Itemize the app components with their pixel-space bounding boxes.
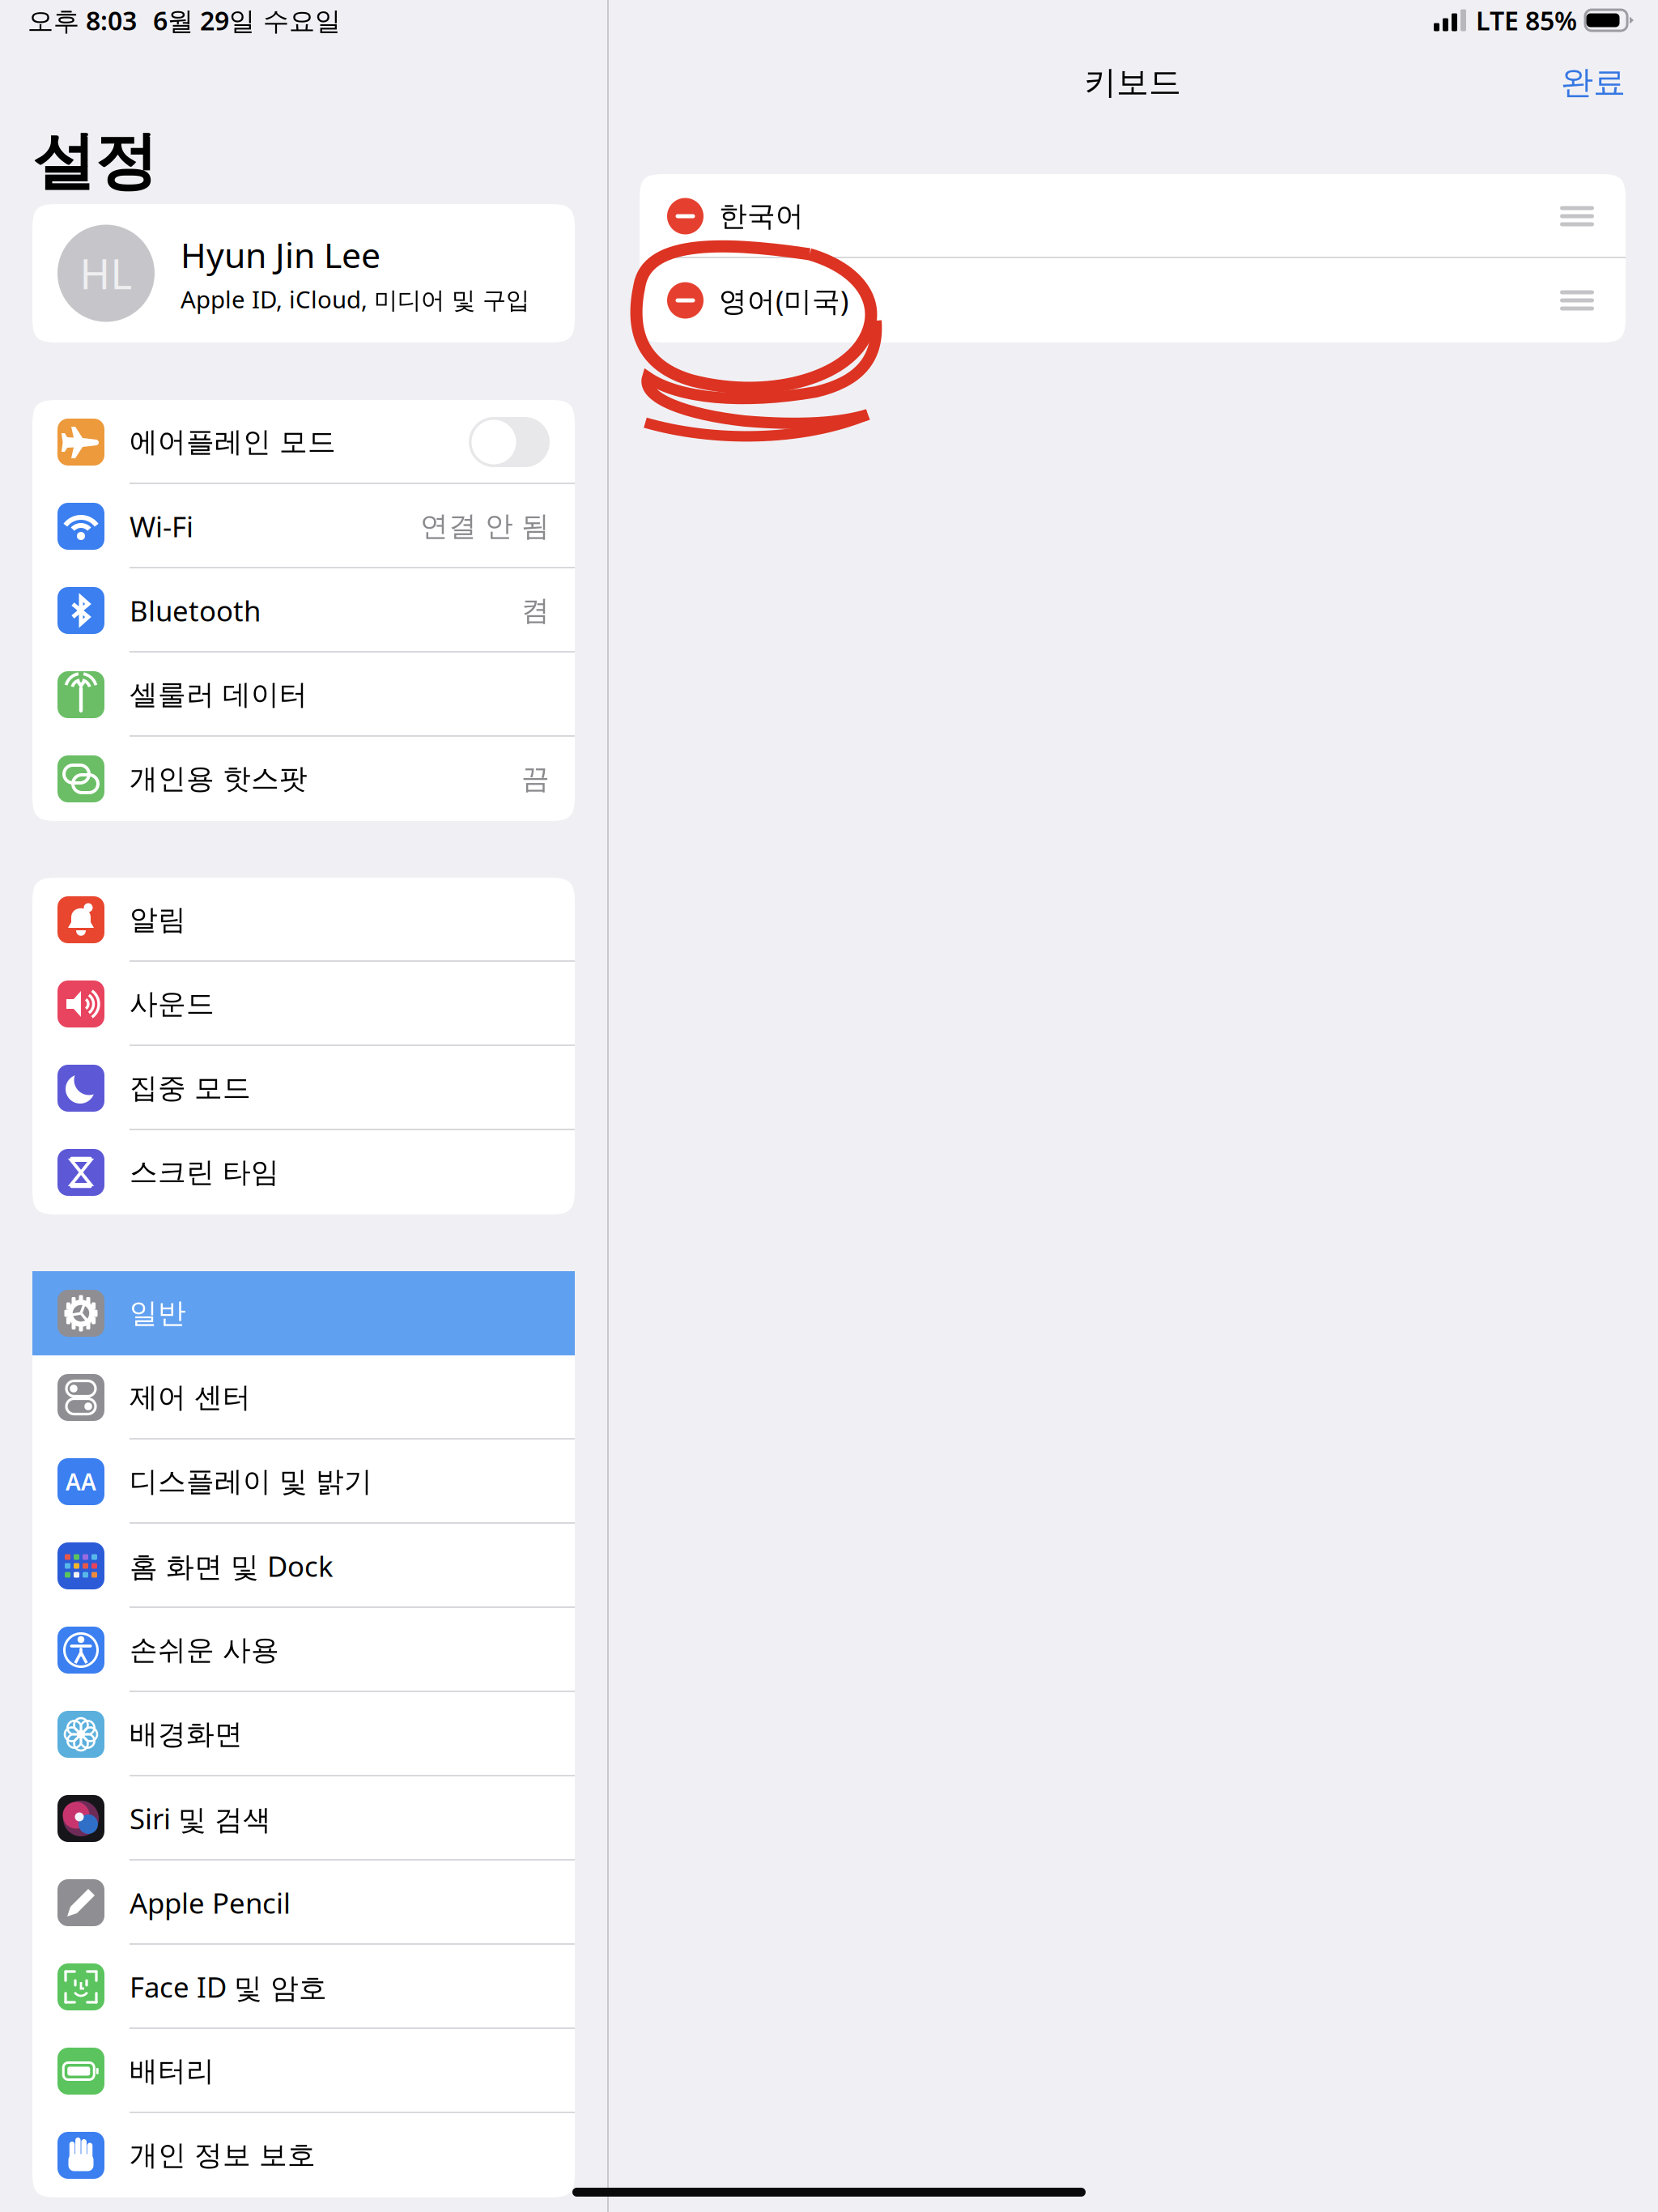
button[interactable]: Apple Pencil xyxy=(32,1861,575,1945)
button[interactable]: 배터리 xyxy=(32,2029,575,2113)
staticText: 키보드 xyxy=(1084,63,1181,102)
button[interactable]: 알림 xyxy=(32,878,575,962)
button[interactable]: Wi-Fi xyxy=(32,484,575,568)
staticText: 한국어 xyxy=(719,199,804,233)
staticText: 6월 29일 수요일 xyxy=(153,3,341,37)
staticText: 개인 정보 보호 xyxy=(130,2138,316,2173)
staticText: 연결 안 됨 xyxy=(420,509,550,544)
staticText: 설정 xyxy=(32,123,157,200)
staticText: 완료 xyxy=(1561,63,1626,102)
staticText: LTE 85% xyxy=(1476,3,1577,37)
staticText: 오후 8:03 xyxy=(28,3,137,37)
staticText: AA xyxy=(66,1467,96,1497)
staticText: 일반 xyxy=(130,1296,186,1331)
staticText: 집중 모드 xyxy=(130,1071,251,1105)
staticText: 홈 화면 및 Dock xyxy=(130,1547,334,1585)
staticText: 손쉬운 사용 xyxy=(130,1633,279,1667)
staticText: 켬 xyxy=(521,593,550,628)
button[interactable]: Siri 및 검색 xyxy=(32,1776,575,1861)
staticText: 스크린 타임 xyxy=(130,1155,279,1190)
staticText: 셀룰러 데이터 xyxy=(130,677,308,712)
staticText: HL xyxy=(80,246,132,301)
staticText: 배터리 xyxy=(130,2054,215,2088)
staticText: 개인용 핫스팟 xyxy=(130,762,308,796)
button[interactable]: HL xyxy=(32,204,575,342)
button[interactable]: AA xyxy=(32,1440,575,1524)
staticText: 디스플레이 및 밝기 xyxy=(130,1464,372,1499)
button[interactable]: Bluetooth xyxy=(32,568,575,653)
button[interactable]: 집중 모드 xyxy=(32,1046,575,1130)
staticText: Siri 및 검색 xyxy=(130,1800,271,1837)
button[interactable]: 개인 정보 보호 xyxy=(32,2113,575,2197)
button[interactable]: 스크린 타임 xyxy=(32,1130,575,1214)
staticText: Hyun Jin Lee xyxy=(181,232,380,278)
staticText: Apple Pencil xyxy=(130,1884,291,1921)
button[interactable]: 제어 센터 xyxy=(32,1355,575,1440)
button[interactable]: 홈 화면 및 Dock xyxy=(32,1524,575,1608)
staticText: Wi-Fi xyxy=(130,508,193,545)
button[interactable]: 한국어 xyxy=(640,174,1626,258)
button[interactable]: 에어플레인 모드 xyxy=(32,400,575,484)
staticText: 끔 xyxy=(521,762,550,796)
staticText: 에어플레인 모드 xyxy=(130,425,336,459)
staticText: Apple ID, iCloud, 미디어 및 구입 xyxy=(181,283,529,315)
staticText: 제어 센터 xyxy=(130,1380,251,1415)
staticText: Bluetooth xyxy=(130,592,261,629)
button[interactable]: 손쉬운 사용 xyxy=(32,1608,575,1692)
staticText: Face ID 및 암호 xyxy=(130,1968,327,2006)
staticText: 알림 xyxy=(130,903,186,937)
button[interactable]: 개인용 핫스팟 xyxy=(32,737,575,821)
staticText: 배경화면 xyxy=(130,1717,243,1752)
button[interactable]: 완료 xyxy=(1550,55,1637,111)
staticText: 영어(미국) xyxy=(719,282,848,319)
button[interactable]: 사운드 xyxy=(32,962,575,1046)
button[interactable]: Face ID 및 암호 xyxy=(32,1945,575,2029)
staticText: 사운드 xyxy=(130,987,215,1021)
button[interactable]: 일반 xyxy=(32,1271,575,1355)
button[interactable]: 영어(미국) xyxy=(640,258,1626,342)
button[interactable]: 셀룰러 데이터 xyxy=(32,653,575,737)
button[interactable]: 배경화면 xyxy=(32,1692,575,1776)
